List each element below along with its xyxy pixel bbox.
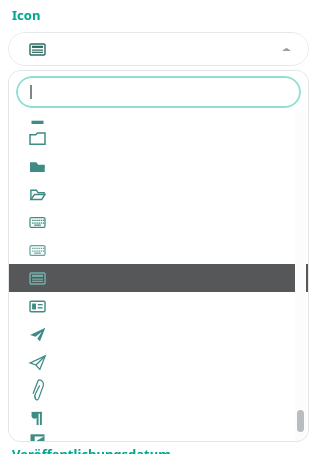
staticText: Veröffentlichungsdatum <box>12 445 171 454</box>
button[interactable]: Folder <box>8 124 309 152</box>
button[interactable]: Keyboard <box>8 208 309 236</box>
button[interactable]: Folder open <box>8 180 309 208</box>
staticText: Icon <box>12 6 41 24</box>
button[interactable]: Id card <box>8 292 309 320</box>
button[interactable]: Search icons <box>16 76 301 108</box>
button[interactable]: Folder open filled <box>8 152 309 180</box>
button[interactable]: Paper plane outline <box>8 348 309 376</box>
button[interactable]: Keyboard outline <box>8 236 309 264</box>
button[interactable]: Newspaper <box>8 264 309 292</box>
button[interactable]: Icon <box>8 432 309 442</box>
button[interactable]: Paperclip <box>8 376 309 404</box>
button[interactable]: Scroll <box>297 410 304 432</box>
button[interactable]: Icon selector, newspaper selected <box>8 32 309 66</box>
button[interactable]: Icon <box>8 112 309 124</box>
button[interactable]: Paper plane <box>8 320 309 348</box>
button[interactable]: Paragraph <box>8 404 309 432</box>
